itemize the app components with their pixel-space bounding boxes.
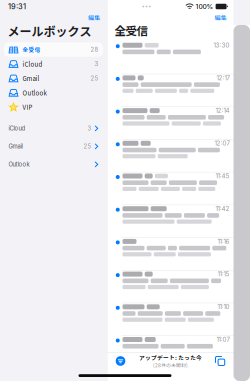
- staticText: 12:17: [216, 74, 229, 82]
- staticText: VIP: [22, 103, 32, 112]
- staticText: Outlook: [22, 88, 46, 97]
- staticText: 11:10: [217, 303, 229, 310]
- button[interactable]: 11:07: [107, 336, 233, 369]
- staticText: 25: [83, 143, 91, 150]
- button[interactable]: Outlook: [4, 86, 103, 100]
- button[interactable]: 12:17: [107, 74, 233, 107]
- staticText: 11:15: [217, 270, 229, 278]
- staticText: 編集: [214, 13, 226, 22]
- staticText: 全受信: [22, 45, 40, 54]
- staticText: 3: [87, 125, 91, 132]
- staticText: アップデート: たった今: [139, 353, 202, 362]
- staticText: Gmail: [8, 143, 22, 150]
- button[interactable]: 11:42: [107, 205, 233, 238]
- staticText: Gmail: [22, 74, 39, 83]
- staticText: 編集: [88, 13, 100, 22]
- button[interactable]: Filter: [112, 354, 128, 368]
- button[interactable]: iCloud: [4, 119, 103, 137]
- staticText: 3: [94, 60, 98, 67]
- staticText: iCloud: [22, 59, 42, 68]
- staticText: 11:45: [215, 172, 229, 180]
- staticText: iCloud: [8, 125, 25, 132]
- button[interactable]: 編集: [212, 13, 228, 21]
- staticText: 全受信: [114, 22, 147, 39]
- button[interactable]: VIP: [4, 100, 103, 114]
- button[interactable]: 13:30: [107, 42, 233, 74]
- button[interactable]: 11:45: [107, 172, 233, 205]
- button[interactable]: 11:15: [107, 270, 233, 303]
- staticText: 100%: [196, 2, 214, 11]
- button[interactable]: 11:10: [107, 303, 233, 336]
- button[interactable]: 11:16: [107, 238, 233, 270]
- button[interactable]: 編集: [86, 13, 102, 21]
- staticText: 19:31: [8, 2, 26, 11]
- button[interactable]: 12:07: [107, 140, 233, 172]
- button[interactable]: Outlook: [4, 155, 103, 173]
- staticText: Outlook: [8, 161, 29, 168]
- staticText: (28件の未開封): [153, 362, 188, 369]
- button[interactable]: iCloud: [4, 57, 103, 71]
- staticText: 13:30: [213, 41, 229, 49]
- button[interactable]: 12:14: [107, 107, 233, 140]
- staticText: 11:42: [215, 205, 229, 212]
- staticText: 12:14: [215, 107, 229, 114]
- staticText: 25: [90, 75, 98, 82]
- staticText: 11:16: [217, 238, 229, 245]
- button[interactable]: 全受信: [4, 42, 103, 57]
- button[interactable]: Gmail: [4, 137, 103, 155]
- staticText: メールボックス: [7, 22, 91, 39]
- button[interactable]: Gmail: [4, 71, 103, 86]
- staticText: 11:07: [216, 336, 229, 343]
- button[interactable]: Compose: [212, 354, 228, 368]
- staticText: 28: [90, 46, 98, 53]
- staticText: 12:07: [214, 140, 229, 147]
